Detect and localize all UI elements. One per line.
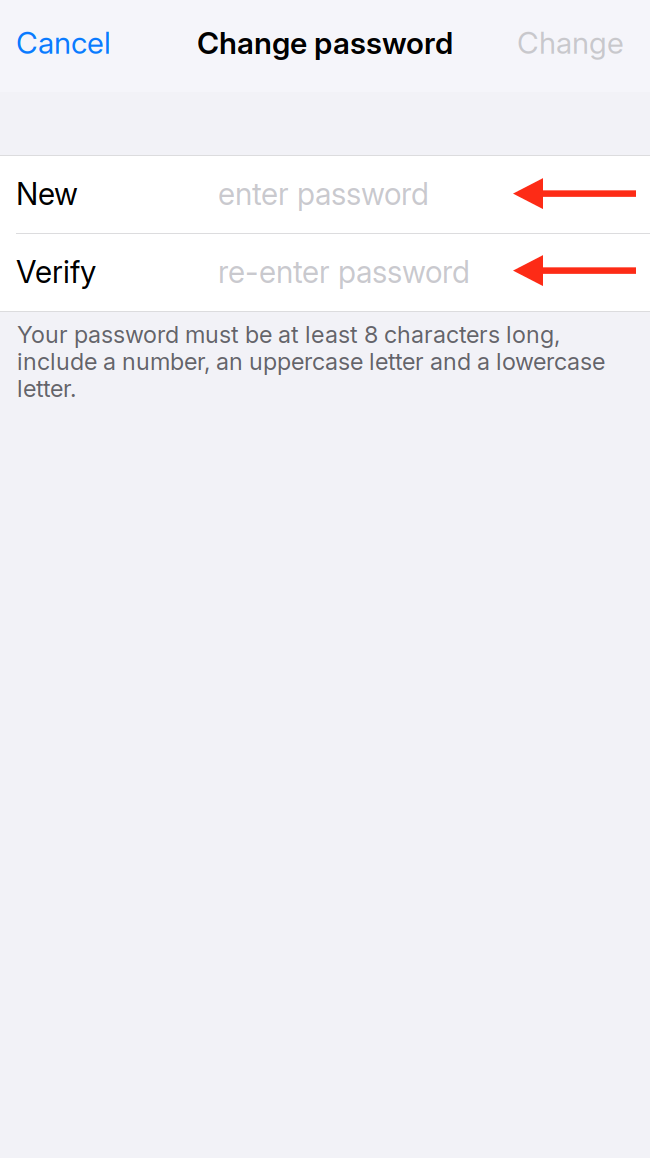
button[interactable]: New: [0, 156, 650, 233]
staticText: re-enter password: [218, 254, 470, 290]
staticText: Verify: [16, 254, 96, 290]
button[interactable]: Cancel: [0, 9, 123, 77]
staticText: enter password: [218, 176, 429, 212]
staticText: Change: [517, 25, 624, 61]
button[interactable]: Verify: [0, 234, 650, 311]
staticText: Your password must be at least 8 charact…: [17, 321, 605, 402]
staticText: Change password: [197, 25, 453, 61]
staticText: Cancel: [16, 25, 111, 61]
staticText: New: [16, 176, 78, 212]
button[interactable]: Change: [505, 9, 650, 77]
